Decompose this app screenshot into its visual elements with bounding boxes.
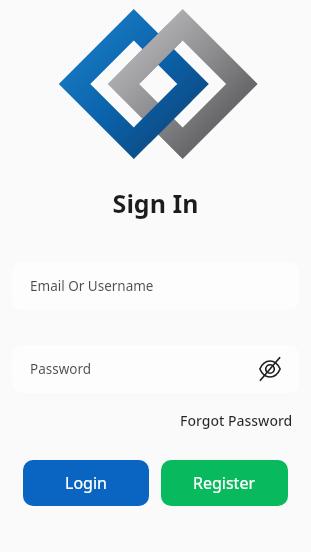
staticText: Forgot Password bbox=[180, 411, 293, 430]
staticText: Sign In bbox=[0, 186, 311, 220]
staticText: Register bbox=[193, 472, 256, 494]
staticText: Password bbox=[30, 360, 92, 378]
staticText: Email Or Username bbox=[30, 277, 154, 295]
button[interactable]: Password bbox=[12, 345, 299, 393]
button[interactable]: Register bbox=[161, 460, 288, 506]
button[interactable]: Login bbox=[23, 460, 149, 506]
button[interactable]: Forgot Password bbox=[162, 405, 311, 436]
button[interactable]: Email Or Username bbox=[12, 262, 299, 310]
staticText: Login bbox=[65, 472, 107, 494]
button[interactable]: Show password bbox=[257, 356, 283, 382]
